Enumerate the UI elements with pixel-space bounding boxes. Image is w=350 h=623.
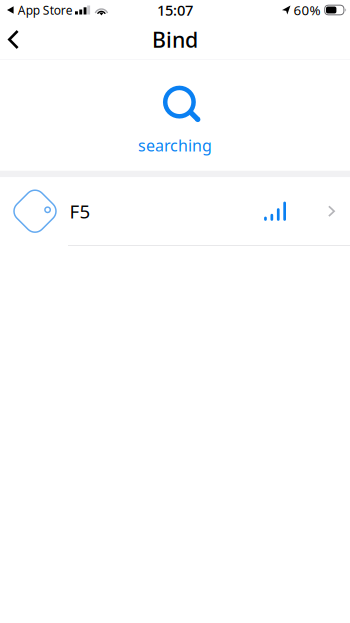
button[interactable]: F5 [0,177,350,246]
staticText: 60% [293,1,320,19]
staticText: F5 [69,199,90,224]
button[interactable]: Back [0,21,33,58]
staticText: Bind [152,25,198,54]
staticText: App Store [18,2,73,18]
staticText: searching [138,135,212,156]
staticText: 15:07 [157,0,193,20]
